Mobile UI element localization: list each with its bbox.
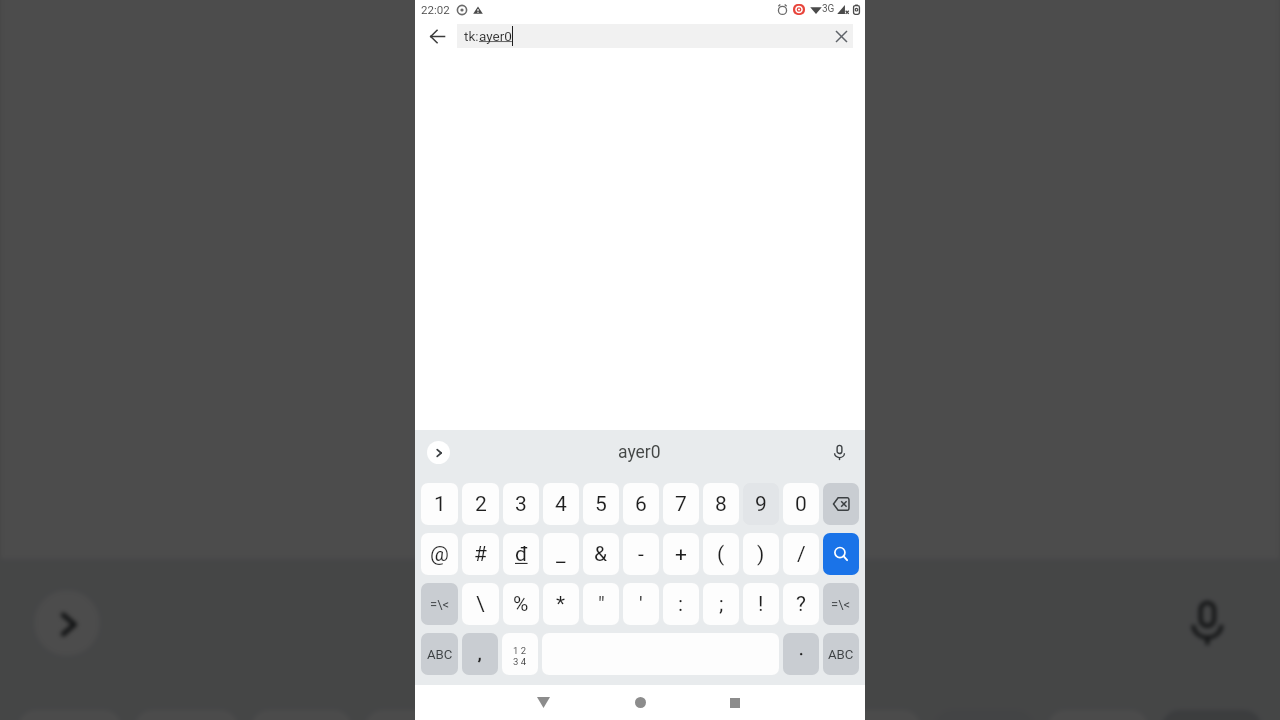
- button[interactable]: !: [743, 583, 779, 625]
- button[interactable]: đ: [503, 533, 539, 575]
- staticText: 4: [555, 492, 567, 517]
- staticText: ayer0: [618, 442, 661, 463]
- staticText: @: [430, 542, 449, 567]
- button[interactable]: 6: [623, 483, 659, 525]
- staticText: /: [797, 542, 806, 567]
- button[interactable]: /: [783, 533, 819, 575]
- staticText: ): [757, 542, 765, 567]
- staticText: ·: [799, 644, 804, 664]
- button[interactable]: +: [663, 533, 699, 575]
- button[interactable]: =\<: [823, 583, 859, 625]
- staticText: 3 4: [513, 656, 527, 667]
- button[interactable]: 0: [783, 483, 819, 525]
- button[interactable]: ·: [783, 633, 819, 675]
- button[interactable]: 8: [819, 710, 922, 720]
- staticText: 8: [715, 492, 727, 517]
- staticText: 0: [795, 492, 807, 517]
- button[interactable]: More suggestions: [427, 441, 450, 464]
- button[interactable]: :: [663, 583, 699, 625]
- staticText: =\<: [831, 597, 851, 612]
- staticText: đ: [515, 542, 528, 567]
- staticText: #: [474, 542, 487, 567]
- button[interactable]: =\<: [421, 583, 458, 625]
- button[interactable]: 1: [421, 483, 458, 525]
- staticText: 9: [755, 492, 767, 517]
- button[interactable]: ,: [462, 633, 498, 675]
- staticText: 6: [635, 492, 647, 517]
- button[interactable]: 5: [583, 483, 619, 525]
- other: Search: [832, 545, 850, 563]
- button[interactable]: Recent apps: [717, 685, 753, 720]
- staticText: *: [556, 592, 566, 617]
- button[interactable]: ;: [703, 583, 739, 625]
- button[interactable]: Backspace: [823, 483, 859, 525]
- staticText: _: [556, 542, 566, 567]
- button[interactable]: Back: [423, 24, 451, 48]
- button[interactable]: 4: [364, 710, 466, 720]
- button[interactable]: #: [462, 533, 499, 575]
- button[interactable]: 2: [462, 483, 499, 525]
- button[interactable]: 8: [703, 483, 739, 525]
- button[interactable]: 3: [503, 483, 539, 525]
- button[interactable]: Clear search: [829, 24, 853, 48]
- staticText: ayer0: [577, 593, 700, 653]
- staticText: ayer0: [479, 28, 512, 44]
- button[interactable]: %: [503, 583, 539, 625]
- staticText: tk:: [464, 28, 479, 44]
- staticText: ;: [719, 592, 724, 617]
- button[interactable]: &: [583, 533, 619, 575]
- button[interactable]: ?: [783, 583, 819, 625]
- button[interactable]: _: [543, 533, 579, 575]
- button[interactable]: @: [421, 533, 458, 575]
- button[interactable]: Voice input: [1172, 587, 1240, 656]
- staticText: 1: [434, 492, 446, 517]
- button[interactable]: -: [623, 533, 659, 575]
- button[interactable]: *: [543, 583, 579, 625]
- button[interactable]: 4: [543, 483, 579, 525]
- button[interactable]: ABC: [823, 633, 859, 675]
- button[interactable]: 1 2: [502, 633, 538, 675]
- staticText: 1 2: [513, 645, 527, 656]
- staticText: &: [594, 542, 608, 567]
- staticText: :: [678, 592, 684, 617]
- staticText: 7: [675, 492, 687, 517]
- staticText: (: [717, 542, 725, 567]
- staticText: \: [476, 592, 485, 617]
- button[interactable]: ): [743, 533, 779, 575]
- staticText: 22:02: [421, 3, 450, 16]
- staticText: -: [638, 542, 644, 567]
- staticText: ABC: [828, 647, 854, 662]
- button[interactable]: Home: [622, 685, 658, 720]
- button[interactable]: ABC: [421, 633, 458, 675]
- button[interactable]: ": [583, 583, 619, 625]
- staticText: ,: [478, 644, 482, 664]
- staticText: 3G: [822, 3, 835, 15]
- staticText: ?: [796, 592, 806, 617]
- button[interactable]: Search: [823, 533, 859, 575]
- button[interactable]: 9: [743, 483, 779, 525]
- button[interactable]: \: [462, 583, 499, 625]
- button[interactable]: (: [703, 533, 739, 575]
- button[interactable]: More suggestions: [34, 590, 100, 656]
- staticText: ': [639, 592, 643, 617]
- button[interactable]: Hide keyboard: [525, 685, 561, 720]
- button[interactable]: 7: [663, 483, 699, 525]
- staticText: 5: [595, 492, 607, 517]
- other: Backspace: [833, 497, 850, 511]
- staticText: !: [758, 592, 764, 617]
- button[interactable]: ': [623, 583, 659, 625]
- staticText: =\<: [430, 597, 450, 612]
- button[interactable]: tk:: [457, 24, 853, 48]
- button[interactable]: Voice input: [827, 440, 851, 464]
- staticText: +: [675, 542, 687, 567]
